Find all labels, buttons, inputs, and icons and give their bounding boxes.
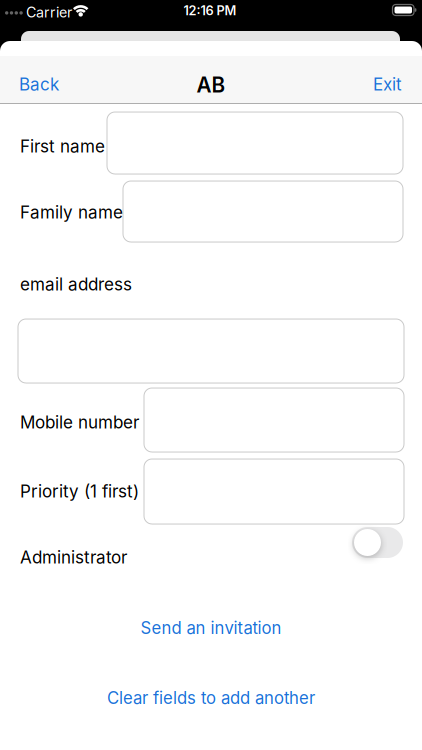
staticText: Exit [373,74,402,95]
button[interactable]: Exit [373,74,402,95]
staticText: Mobile number [20,412,139,433]
staticText: Priority (1 first) [20,481,139,502]
staticText: email address [20,274,132,295]
button[interactable]: Send an invitation [140,618,281,638]
button[interactable]: Mobile number [144,388,404,452]
staticText: Back [19,74,59,95]
staticText: 12:16 PM [183,3,236,18]
staticText: First name [20,136,105,157]
button[interactable]: Administrator [352,527,403,558]
button[interactable]: First name [107,112,403,174]
staticText: Send an invitation [140,618,281,638]
staticText: Family name [20,202,123,223]
button[interactable]: Clear fields to add another [107,688,315,708]
staticText: Carrier [26,4,72,21]
staticText: Clear fields to add another [107,688,315,708]
button[interactable]: Family name [123,181,403,242]
button[interactable]: Back [19,74,59,95]
button[interactable]: email address [18,319,404,383]
staticText: AB [196,72,225,97]
button[interactable]: Priority (1 first) [144,459,404,524]
staticText: Administrator [20,547,127,568]
